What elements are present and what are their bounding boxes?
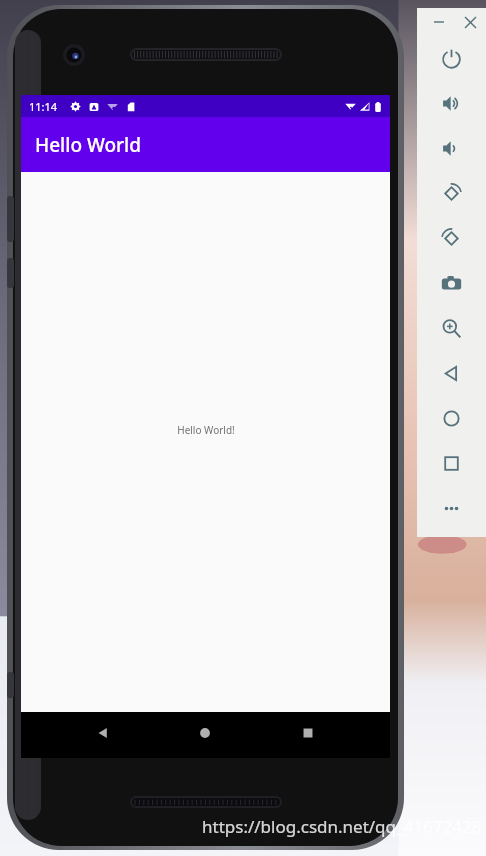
button[interactable]: Home: [190, 718, 220, 748]
button[interactable]: Close: [460, 12, 480, 32]
staticText: Hello World!: [177, 423, 235, 437]
button[interactable]: Rotate right: [417, 216, 486, 261]
button[interactable]: Rotate left: [417, 171, 486, 216]
button[interactable]: Back: [88, 718, 118, 748]
button[interactable]: Volume down: [417, 126, 486, 171]
button[interactable]: Overview: [417, 441, 486, 486]
button[interactable]: Screenshot: [417, 261, 486, 306]
button[interactable]: Recent apps: [293, 718, 323, 748]
button[interactable]: More: [417, 486, 486, 531]
button[interactable]: Back: [417, 351, 486, 396]
button[interactable]: Power: [417, 36, 486, 81]
staticText: Hello World: [35, 132, 141, 158]
staticText: https://blog.csdn.net/qq_41672428: [202, 815, 482, 838]
button[interactable]: Minimise: [429, 12, 449, 32]
button[interactable]: Home: [417, 396, 486, 441]
staticText: 11:14: [29, 99, 58, 114]
button[interactable]: Volume up: [417, 81, 486, 126]
button[interactable]: Hello World: [21, 117, 390, 172]
button[interactable]: Zoom: [417, 306, 486, 351]
